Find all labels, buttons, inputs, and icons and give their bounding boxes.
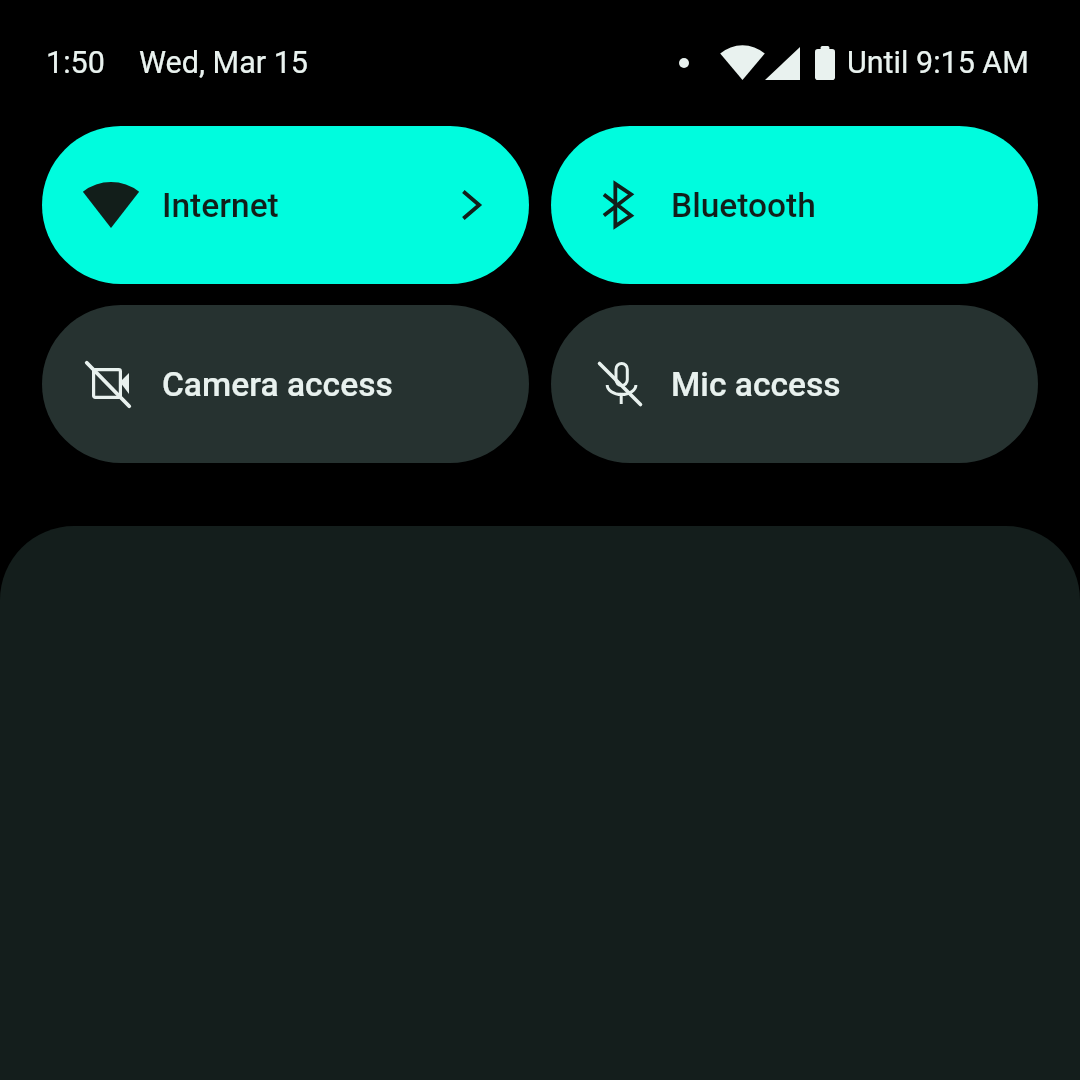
button[interactable]: Mic access <box>551 305 1038 463</box>
button[interactable]: Bluetooth <box>551 126 1038 284</box>
button[interactable]: Camera access <box>42 305 529 463</box>
button[interactable]: Internet <box>42 126 529 284</box>
staticText: Internet <box>162 186 279 225</box>
staticText: Bluetooth <box>671 186 816 225</box>
button[interactable]: Open Internet settings <box>455 181 489 229</box>
other: Battery <box>815 46 835 80</box>
staticText: Until 9:15 AM <box>847 45 1029 81</box>
other: Wi-Fi <box>722 46 763 80</box>
other: Mobile signal <box>765 47 800 80</box>
other: Privacy indicator <box>679 58 689 68</box>
staticText: Wed, Mar 15 <box>139 45 308 81</box>
staticText: 1:50 <box>46 45 105 81</box>
staticText: Mic access <box>671 365 841 404</box>
staticText: Camera access <box>162 365 393 404</box>
